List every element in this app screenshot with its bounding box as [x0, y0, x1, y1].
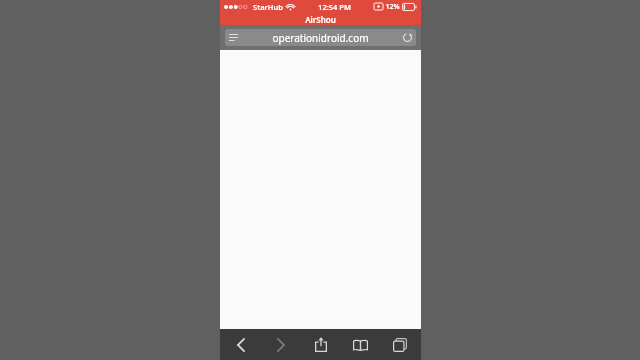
button[interactable]: Forward	[262, 329, 300, 360]
staticText: operationidroid.com	[272, 31, 369, 45]
button[interactable]: Share	[302, 329, 340, 360]
staticText: AirShou	[305, 14, 336, 25]
button[interactable]: Reader view	[225, 29, 416, 46]
button[interactable]: Bookmarks	[341, 329, 379, 360]
button[interactable]: Tabs	[381, 329, 419, 360]
button[interactable]: Reader view	[225, 29, 242, 46]
staticText: 12%	[385, 2, 400, 12]
staticText: StarHub	[253, 2, 283, 12]
button[interactable]: Reload	[399, 29, 416, 46]
staticText: 12:54 PM	[318, 2, 351, 12]
button[interactable]: Back	[222, 329, 260, 360]
